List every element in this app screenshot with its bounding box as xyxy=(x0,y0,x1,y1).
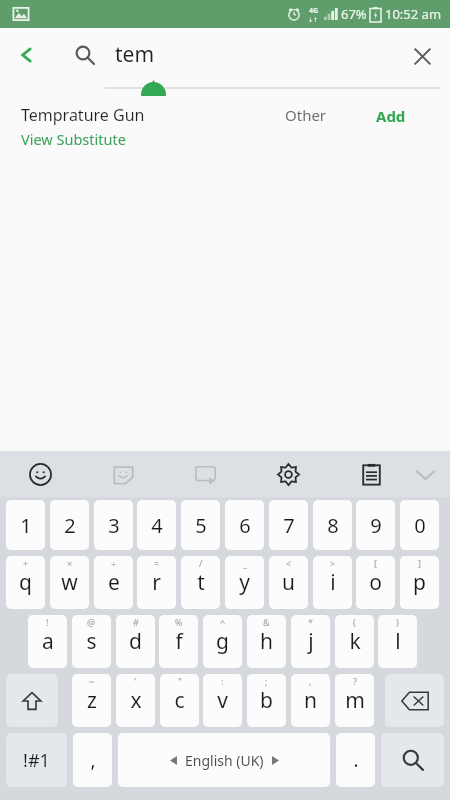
button[interactable]: s xyxy=(72,615,111,668)
button[interactable]: 7 xyxy=(269,500,308,550)
button[interactable]: Collapse keyboard xyxy=(412,462,438,488)
button[interactable]: n xyxy=(291,674,330,727)
button[interactable]: d xyxy=(116,615,155,668)
button[interactable]: Shift xyxy=(6,674,58,727)
staticText: 10:52 am xyxy=(385,5,442,23)
button[interactable]: Emoji xyxy=(23,457,57,491)
staticText: tem xyxy=(115,40,155,69)
staticText: v xyxy=(217,686,228,715)
staticText: , xyxy=(309,675,312,687)
button[interactable]: w xyxy=(50,556,89,609)
staticText: !#1 xyxy=(23,748,50,773)
staticText: ) xyxy=(396,616,399,628)
staticText: : xyxy=(221,675,224,687)
staticText: b xyxy=(260,686,273,715)
staticText: > xyxy=(330,557,336,569)
button[interactable]: c xyxy=(160,674,199,727)
button[interactable]: Back xyxy=(6,34,48,76)
button[interactable]: p xyxy=(400,556,439,609)
button[interactable]: Settings xyxy=(271,457,305,491)
staticText: f xyxy=(175,627,183,656)
button[interactable]: , xyxy=(73,733,112,787)
staticText: k xyxy=(349,627,361,656)
button[interactable]: English (UK) xyxy=(118,733,330,787)
staticText: 1 xyxy=(20,512,32,539)
staticText: ↓↑ xyxy=(308,16,319,23)
button[interactable]: Clipboard xyxy=(354,457,388,491)
staticText: q xyxy=(19,568,32,597)
staticText: Temprature Gun xyxy=(21,104,145,126)
button[interactable]: 5 xyxy=(181,500,220,550)
button[interactable]: o xyxy=(356,556,395,609)
staticText: n xyxy=(304,686,317,715)
button[interactable]: k xyxy=(335,615,374,668)
button[interactable]: Temprature Gun xyxy=(0,96,450,154)
button[interactable]: 0 xyxy=(400,500,439,550)
staticText: e xyxy=(108,568,120,597)
staticText: 67% xyxy=(341,5,367,23)
staticText: + xyxy=(23,557,29,569)
staticText: j xyxy=(308,627,314,656)
button[interactable]: View Substitute xyxy=(21,129,126,149)
button[interactable]: l xyxy=(378,615,417,668)
staticText: . xyxy=(353,747,359,773)
staticText: 2 xyxy=(64,512,76,539)
button[interactable]: !#1 xyxy=(6,733,67,787)
button[interactable]: i xyxy=(313,556,352,609)
button[interactable]: e xyxy=(94,556,133,609)
staticText: 3 xyxy=(108,512,120,539)
staticText: z xyxy=(87,686,97,715)
staticText: 7 xyxy=(283,512,295,539)
staticText: # xyxy=(133,616,139,628)
button[interactable]: GIF xyxy=(188,457,222,491)
staticText: d xyxy=(129,627,142,656)
button[interactable]: 2 xyxy=(50,500,89,550)
button[interactable]: a xyxy=(28,615,67,668)
button[interactable]: j xyxy=(291,615,330,668)
button[interactable]: g xyxy=(203,615,242,668)
button[interactable]: b xyxy=(247,674,286,727)
staticText: 8 xyxy=(327,512,339,539)
button[interactable]: h xyxy=(247,615,286,668)
button[interactable]: Clear xyxy=(400,34,444,78)
button[interactable]: x xyxy=(116,674,155,727)
button[interactable]: m xyxy=(335,674,374,727)
staticText: g xyxy=(216,627,229,656)
button[interactable]: 1 xyxy=(6,500,45,550)
staticText: ~ xyxy=(89,675,95,687)
staticText: ( xyxy=(353,616,356,628)
button[interactable]: u xyxy=(269,556,308,609)
staticText: u xyxy=(282,568,295,597)
button[interactable]: z xyxy=(72,674,111,727)
staticText: ; xyxy=(265,675,268,687)
button[interactable]: 3 xyxy=(94,500,133,550)
staticText: y xyxy=(239,568,250,597)
staticText: 0 xyxy=(414,512,426,539)
button[interactable]: 8 xyxy=(313,500,352,550)
button[interactable]: 9 xyxy=(356,500,395,550)
button[interactable]: Search xyxy=(64,34,106,76)
staticText: / xyxy=(199,557,203,569)
staticText: 5 xyxy=(195,512,207,539)
button[interactable]: Search xyxy=(381,733,444,787)
button[interactable]: v xyxy=(203,674,242,727)
button[interactable]: q xyxy=(6,556,45,609)
staticText: = xyxy=(154,557,160,569)
button[interactable]: Add xyxy=(376,106,406,126)
staticText: i xyxy=(330,568,336,597)
staticText: Other xyxy=(285,105,327,125)
staticText: 9 xyxy=(370,512,382,539)
staticText: 4G xyxy=(309,6,319,16)
button[interactable]: Backspace xyxy=(385,674,444,727)
staticText: l xyxy=(395,627,401,656)
button[interactable]: Sticker xyxy=(106,457,140,491)
staticText: ' xyxy=(134,675,137,687)
button[interactable]: 6 xyxy=(225,500,264,550)
button[interactable]: y xyxy=(225,556,264,609)
staticText: & xyxy=(263,616,270,628)
button[interactable]: . xyxy=(336,733,375,787)
button[interactable]: f xyxy=(159,615,198,668)
button[interactable]: 4 xyxy=(137,500,176,550)
button[interactable]: t xyxy=(181,556,220,609)
button[interactable]: r xyxy=(137,556,176,609)
